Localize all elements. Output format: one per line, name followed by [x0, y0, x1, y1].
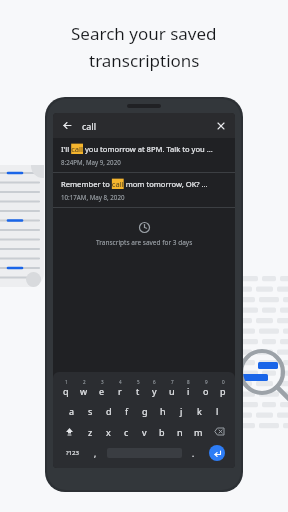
staticText: I'll call you tomorrow at 8PM. Talk to y…	[61, 144, 213, 154]
staticText: c	[124, 426, 129, 438]
button[interactable]: c	[117, 423, 135, 440]
staticText: Transcripts are saved for 3 days	[96, 238, 193, 247]
staticText: s	[88, 405, 93, 417]
staticText: 7	[171, 379, 174, 385]
button[interactable]: h	[154, 402, 172, 419]
staticText: .	[192, 448, 195, 459]
button[interactable]: 6	[146, 378, 163, 398]
staticText: 3	[101, 379, 104, 385]
button[interactable]: 0	[214, 378, 231, 398]
staticText: 0	[222, 379, 225, 385]
staticText: k	[197, 405, 202, 417]
button[interactable]: d	[100, 402, 118, 419]
button[interactable]: v	[135, 423, 153, 440]
staticText: d	[106, 405, 112, 417]
staticText: m	[194, 426, 203, 438]
button[interactable]: .	[185, 444, 202, 462]
staticText: w	[80, 385, 88, 397]
staticText: 8:24PM, May 9, 2020	[61, 158, 121, 166]
button[interactable]: f	[118, 402, 136, 419]
staticText: h	[160, 405, 166, 417]
button[interactable]: j	[172, 402, 190, 419]
staticText: Remember to call mom tomorrow, OK? …	[61, 179, 208, 189]
staticText: b	[159, 426, 165, 438]
button[interactable]: z	[81, 423, 99, 440]
staticText: g	[142, 405, 148, 417]
button[interactable]: 4	[111, 378, 129, 398]
button[interactable]: s	[81, 402, 100, 419]
staticText: n	[177, 426, 183, 438]
staticText: transcriptions	[89, 49, 200, 72]
button[interactable]: ,	[87, 444, 104, 462]
button[interactable]: Backspace	[207, 423, 231, 440]
staticText: 5	[137, 379, 140, 385]
button[interactable]: 7	[163, 378, 180, 398]
staticText: a	[69, 405, 75, 417]
button[interactable]: 5	[129, 378, 146, 398]
button[interactable]: 2	[75, 378, 93, 398]
staticText: 4	[119, 379, 122, 385]
staticText: v	[142, 426, 147, 438]
button[interactable]: Back	[61, 119, 74, 132]
button[interactable]: l	[208, 402, 226, 419]
staticText: ,	[94, 448, 97, 459]
staticText: u	[169, 385, 175, 397]
staticText: r	[118, 385, 122, 397]
staticText: p	[220, 385, 226, 397]
button[interactable]: x	[99, 423, 117, 440]
staticText: 2	[83, 379, 86, 385]
button[interactable]: I'll call you tomorrow at 8PM. Talk to y…	[53, 138, 235, 172]
button[interactable]: b	[153, 423, 171, 440]
button[interactable]: k	[190, 402, 208, 419]
staticText: 6	[153, 379, 156, 385]
staticText: e	[99, 385, 105, 397]
staticText: x	[106, 426, 111, 438]
staticText: 9	[205, 379, 208, 385]
button[interactable]: 1	[57, 378, 75, 398]
staticText: o	[203, 385, 209, 397]
button[interactable]: Enter	[209, 445, 225, 461]
staticText: 10:17AM, May 8, 2020	[61, 193, 125, 201]
button[interactable]: m	[189, 423, 207, 440]
button[interactable]: ?123	[57, 444, 87, 462]
button[interactable]: a	[62, 402, 81, 419]
staticText: 1	[65, 379, 68, 385]
staticText: j	[180, 405, 183, 417]
staticText: t	[136, 385, 140, 397]
button[interactable]: n	[171, 423, 189, 440]
staticText: l	[216, 405, 219, 417]
staticText: ?123	[66, 449, 79, 457]
button[interactable]: Remember to call mom tomorrow, OK? …	[53, 173, 235, 207]
staticText: i	[187, 385, 190, 397]
staticText: z	[88, 426, 93, 438]
staticText: call	[82, 120, 97, 132]
button[interactable]: 8	[180, 378, 197, 398]
button[interactable]: 3	[93, 378, 111, 398]
staticText: 8	[187, 379, 190, 385]
button[interactable]: 9	[197, 378, 214, 398]
button[interactable]: g	[136, 402, 154, 419]
staticText: q	[63, 385, 69, 397]
staticText: Search your saved	[71, 22, 217, 45]
staticText: y	[152, 385, 157, 397]
button[interactable]: Shift	[57, 423, 81, 440]
button[interactable]: Clear search	[214, 119, 227, 132]
staticText: f	[125, 405, 129, 417]
